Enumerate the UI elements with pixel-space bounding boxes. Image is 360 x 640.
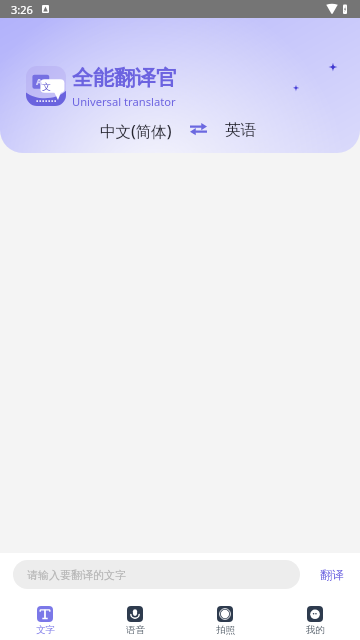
staticText: 英语: [225, 120, 256, 140]
button[interactable]: 翻译: [320, 567, 344, 582]
button[interactable]: Camera: [180, 596, 270, 640]
button[interactable]: 英语: [219, 117, 262, 143]
button[interactable]: 请输入要翻译的文字: [13, 560, 300, 589]
staticText: 我的: [306, 624, 325, 636]
staticText: A: [36, 75, 43, 87]
other: Voice: [127, 606, 143, 622]
staticText: 全能翻译官: [72, 65, 177, 91]
staticText: 文字: [36, 624, 55, 636]
staticText: 语音: [126, 624, 145, 636]
staticText: Universal translator: [72, 94, 176, 109]
staticText: 中文(简体): [100, 120, 172, 141]
button[interactable]: Text translate: [0, 596, 90, 640]
staticText: 请输入要翻译的文字: [27, 568, 126, 582]
button[interactable]: Swap languages: [186, 120, 210, 138]
staticText: 拍照: [216, 624, 235, 636]
other: Profile: [307, 606, 323, 622]
button[interactable]: 中文(简体): [94, 117, 178, 144]
staticText: 翻译: [320, 567, 344, 582]
button[interactable]: Profile: [270, 596, 360, 640]
other: Camera: [217, 606, 233, 622]
other: Text translate: [37, 606, 53, 622]
staticText: 3:26: [11, 2, 33, 17]
staticText: 文: [42, 81, 51, 92]
button[interactable]: Voice: [90, 596, 180, 640]
